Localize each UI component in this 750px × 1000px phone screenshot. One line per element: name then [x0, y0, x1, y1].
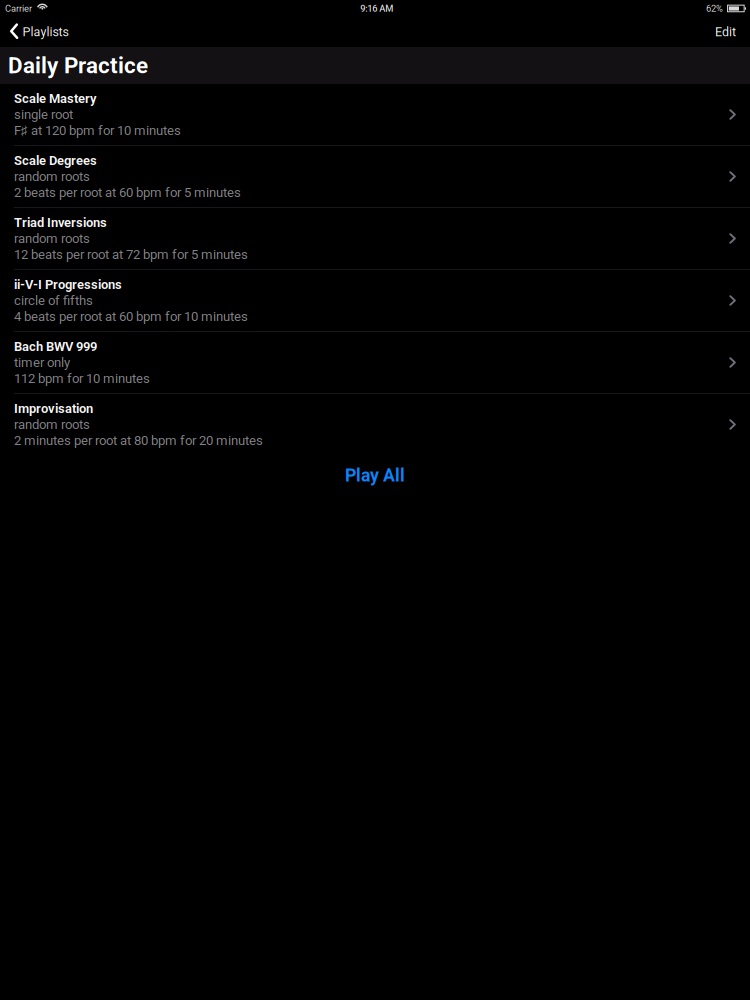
staticText: 62%	[706, 3, 723, 14]
button[interactable]: Improvisation	[0, 394, 750, 455]
button[interactable]: Play All	[0, 455, 750, 493]
button[interactable]: Edit	[705, 17, 750, 47]
staticText: F♯ at 120 bpm for 10 minutes	[14, 123, 181, 138]
staticText: ii-V-I Progressions	[14, 277, 122, 292]
staticText: Playlists	[22, 25, 68, 39]
button[interactable]: Playlists	[0, 17, 76, 47]
staticText: single root	[14, 107, 73, 122]
staticText: Triad Inversions	[14, 215, 107, 230]
button[interactable]: Triad Inversions	[0, 208, 750, 270]
staticText: random roots	[14, 231, 90, 246]
staticText: 12 beats per root at 72 bpm for 5 minute…	[14, 247, 248, 262]
staticText: 112 bpm for 10 minutes	[14, 371, 150, 386]
staticText: 2 minutes per root at 80 bpm for 20 minu…	[14, 433, 263, 448]
staticText: Daily Practice	[8, 52, 148, 79]
staticText: Bach BWV 999	[14, 339, 97, 354]
staticText: Edit	[715, 25, 736, 39]
button[interactable]: Scale Degrees	[0, 146, 750, 208]
staticText: Scale Mastery	[14, 91, 97, 106]
staticText: timer only	[14, 355, 70, 370]
staticText: Carrier	[5, 3, 32, 14]
staticText: Improvisation	[14, 401, 93, 416]
button[interactable]: Bach BWV 999	[0, 332, 750, 394]
button[interactable]: Scale Mastery	[0, 84, 750, 146]
staticText: 9:16 AM	[360, 3, 393, 14]
staticText: 4 beats per root at 60 bpm for 10 minute…	[14, 309, 248, 324]
staticText: Scale Degrees	[14, 153, 97, 168]
staticText: random roots	[14, 417, 90, 432]
button[interactable]: ii-V-I Progressions	[0, 270, 750, 332]
staticText: 2 beats per root at 60 bpm for 5 minutes	[14, 185, 241, 200]
staticText: random roots	[14, 169, 90, 184]
staticText: circle of fifths	[14, 293, 93, 308]
staticText: Play All	[345, 465, 405, 486]
